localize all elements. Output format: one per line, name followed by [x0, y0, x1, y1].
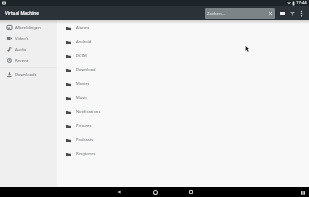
button[interactable]: Recent: [0, 55, 57, 66]
button[interactable]: Video's: [0, 33, 57, 44]
button[interactable]: Download: [57, 63, 309, 77]
staticText: Ringtones: [76, 151, 96, 157]
button[interactable]: More options: [297, 8, 306, 19]
staticText: Movies: [76, 81, 90, 87]
staticText: Zoeken...: [207, 11, 225, 17]
staticText: Podcasts: [76, 137, 94, 143]
button[interactable]: Android: [57, 35, 309, 49]
button[interactable]: Music: [57, 91, 309, 105]
staticText: Android: [76, 39, 92, 45]
button[interactable]: Alarms: [57, 21, 309, 35]
staticText: DCIM: [76, 53, 87, 59]
button[interactable]: Recent apps: [186, 187, 196, 197]
button[interactable]: Audio: [0, 44, 57, 55]
staticText: Audio: [15, 47, 27, 53]
button[interactable]: Back: [114, 187, 124, 197]
button[interactable]: View mode: [278, 8, 287, 19]
staticText: Download: [76, 67, 96, 73]
staticText: Afbeeldingen: [15, 25, 41, 31]
button[interactable]: Keyboard: [300, 190, 305, 195]
button[interactable]: Home: [150, 187, 160, 197]
staticText: Recent: [15, 58, 29, 64]
staticText: Downloads: [15, 72, 37, 78]
button[interactable]: Podcasts: [57, 133, 309, 147]
staticText: Pictures: [76, 123, 92, 129]
staticText: 17:44: [296, 0, 307, 6]
button[interactable]: Sort: [287, 8, 297, 19]
button[interactable]: Movies: [57, 77, 309, 91]
staticText: Music: [76, 95, 88, 101]
button[interactable]: DCIM: [57, 49, 309, 63]
button[interactable]: Pictures: [57, 119, 309, 133]
staticText: Notifications: [76, 109, 101, 115]
button[interactable]: Ringtones: [57, 147, 309, 161]
staticText: Virtual Machine: [5, 10, 39, 16]
button[interactable]: Afbeeldingen: [0, 22, 57, 33]
button[interactable]: Downloads: [0, 69, 57, 80]
button[interactable]: Notifications: [57, 105, 309, 119]
staticText: Video's: [15, 36, 29, 42]
other: Clear search: [268, 11, 273, 16]
button[interactable]: Zoeken...: [205, 8, 275, 19]
staticText: Alarms: [76, 25, 90, 31]
